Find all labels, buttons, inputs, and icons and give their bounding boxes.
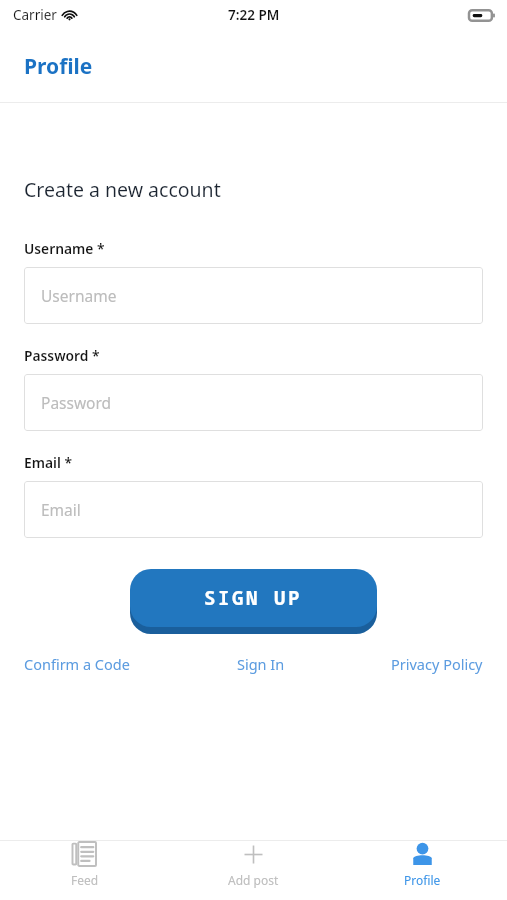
staticText: SIGN UP xyxy=(204,585,303,611)
staticText: Email * xyxy=(24,453,72,472)
staticText: Username * xyxy=(24,239,105,258)
button[interactable]: Privacy Policy xyxy=(391,654,483,674)
staticText: 7:22 PM xyxy=(228,6,280,24)
button[interactable]: Profile xyxy=(338,841,507,888)
staticText: Profile xyxy=(404,872,441,888)
button[interactable]: SIGN UP xyxy=(130,569,377,634)
button[interactable]: Sign In xyxy=(237,654,285,674)
staticText: Profile xyxy=(24,52,93,81)
staticText: Sign In xyxy=(237,654,285,674)
button[interactable]: Confirm a Code xyxy=(24,654,130,674)
staticText: Add post xyxy=(228,872,279,888)
button[interactable]: Feed xyxy=(0,841,169,888)
button[interactable]: Add post xyxy=(169,841,338,888)
staticText: Create a new account xyxy=(24,176,221,203)
button[interactable]: Email xyxy=(24,481,483,538)
staticText: Username xyxy=(41,285,117,306)
staticText: Confirm a Code xyxy=(24,654,130,674)
staticText: Email xyxy=(41,499,81,520)
staticText: Privacy Policy xyxy=(391,654,483,674)
staticText: Password xyxy=(41,392,112,413)
staticText: Carrier xyxy=(13,6,57,24)
staticText: Feed xyxy=(71,872,99,888)
button[interactable]: Username xyxy=(24,267,483,324)
staticText: Password * xyxy=(24,346,100,365)
button[interactable]: Password xyxy=(24,374,483,431)
